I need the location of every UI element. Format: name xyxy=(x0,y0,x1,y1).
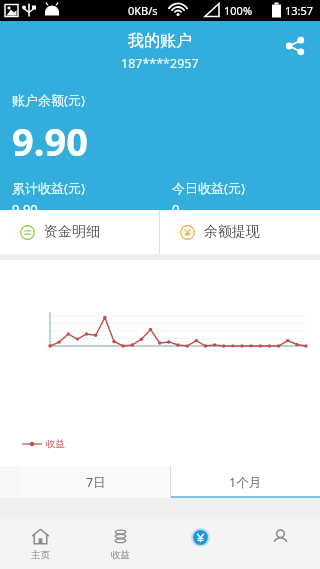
staticText: 9.90 xyxy=(12,200,38,210)
staticText: 我的账户 xyxy=(128,31,192,51)
staticText: 0 xyxy=(172,200,180,210)
button[interactable]: 收益 xyxy=(80,519,160,569)
staticText: 今日收益(元) xyxy=(172,179,245,197)
button[interactable]: 余额提现 xyxy=(160,210,320,254)
staticText: 0KB/s xyxy=(128,3,158,18)
button[interactable]: Share xyxy=(278,29,312,63)
staticText: 100% xyxy=(224,3,253,18)
staticText: 收益 xyxy=(46,438,65,450)
staticText: 1个月 xyxy=(229,474,262,491)
staticText: 余额提现 xyxy=(204,223,260,241)
staticText: 7日 xyxy=(86,474,106,491)
staticText: 累计收益(元) xyxy=(12,179,85,197)
staticText: 13:57 xyxy=(285,3,314,18)
button[interactable]: 1个月 xyxy=(171,466,320,498)
button[interactable]: 主页 xyxy=(0,519,80,569)
staticText: 收益 xyxy=(111,549,130,561)
staticText: 187****2957 xyxy=(121,55,199,72)
button[interactable]: Tab xyxy=(160,519,240,569)
staticText: 账户余额(元) xyxy=(12,91,85,109)
button[interactable]: 7日 xyxy=(21,466,170,498)
button[interactable]: 资金明细 xyxy=(0,210,159,254)
button[interactable]: Tab xyxy=(240,519,320,569)
staticText: 资金明细 xyxy=(44,223,100,241)
staticText: 主页 xyxy=(31,549,50,561)
staticText: 9.90 xyxy=(12,115,88,167)
